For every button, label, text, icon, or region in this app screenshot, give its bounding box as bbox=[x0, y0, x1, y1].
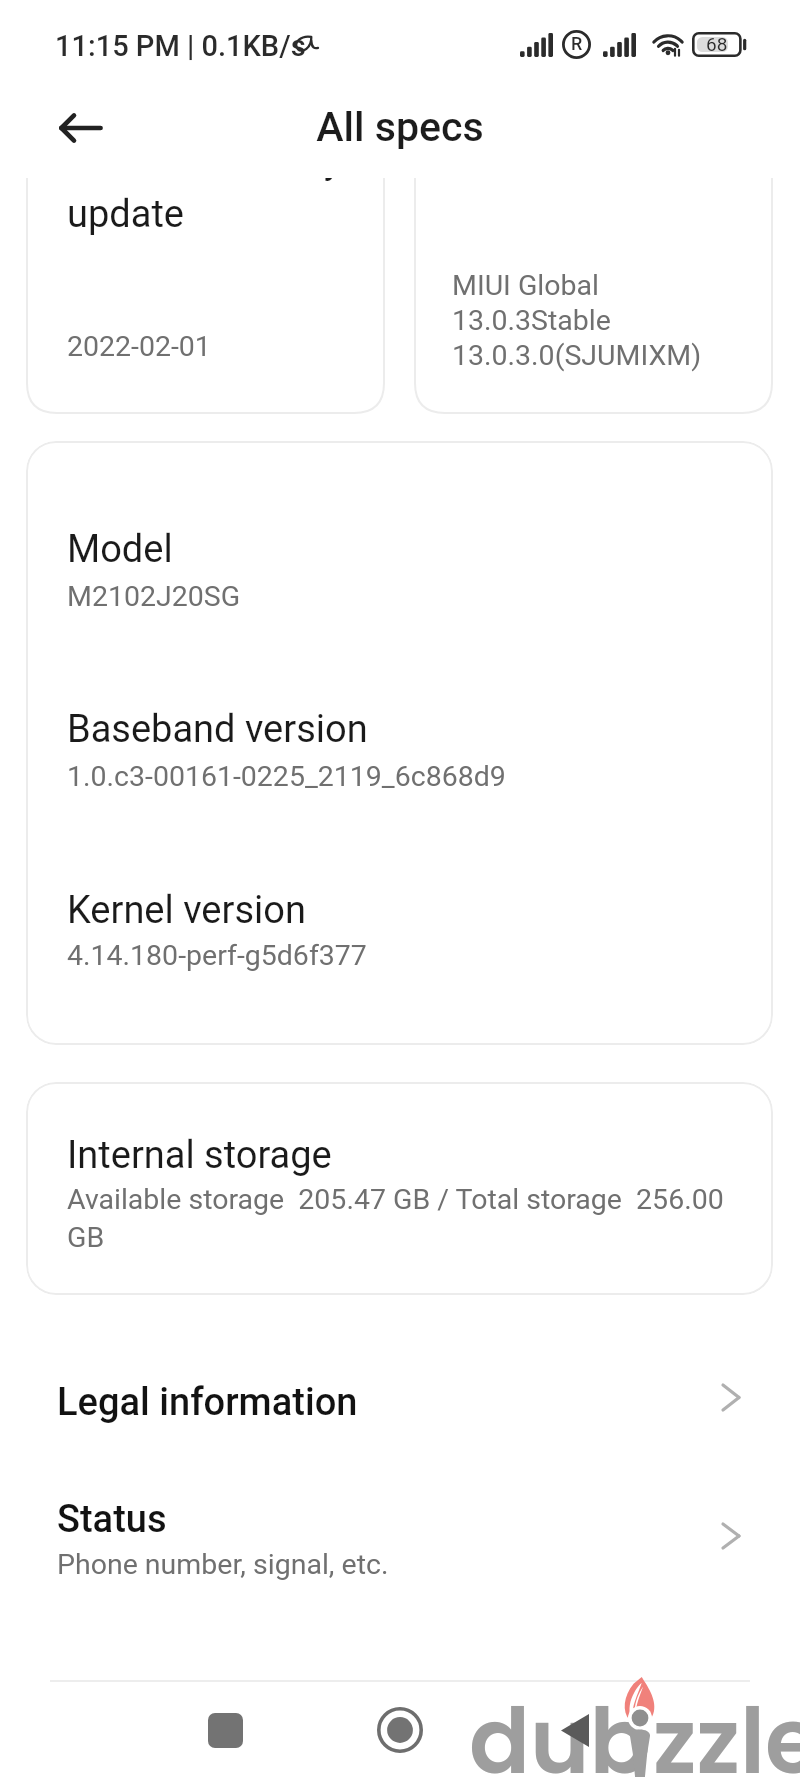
staticText: MIUI Global 13.0.3Stable 13.0.3.0(SJUMIX… bbox=[452, 269, 702, 372]
button[interactable]: Back bbox=[54, 101, 108, 155]
button[interactable]: Recent apps bbox=[165, 1681, 285, 1777]
staticText: 68 bbox=[706, 33, 728, 55]
staticText: Android security bbox=[67, 138, 377, 186]
button[interactable]: Status bbox=[0, 1462, 800, 1602]
staticText: dub bbox=[469, 1679, 651, 1777]
staticText: 4.14.180-perf-g5d6f377 bbox=[67, 939, 367, 972]
button[interactable]: Home bbox=[340, 1681, 460, 1777]
staticText: Kernel version bbox=[67, 888, 306, 933]
staticText: 1.0.c3-00161-0225_2119_6c868d9 bbox=[67, 760, 506, 793]
staticText: Phone number, signal, etc. bbox=[57, 1548, 389, 1581]
staticText: Status bbox=[57, 1497, 167, 1542]
staticText: MIUI version bbox=[455, 136, 755, 184]
button[interactable]: Legal information bbox=[0, 1340, 800, 1460]
button[interactable]: Back bbox=[515, 1681, 635, 1777]
staticText: Baseband version bbox=[67, 707, 368, 752]
staticText: 2022-02-01 bbox=[67, 330, 211, 363]
staticText: Internal storage bbox=[67, 1133, 332, 1178]
staticText: update bbox=[67, 192, 184, 237]
staticText: R bbox=[571, 33, 583, 54]
staticText: Model bbox=[67, 527, 173, 572]
staticText: 11:15 PM | 0.1KB/s bbox=[55, 29, 306, 63]
staticText: Legal information bbox=[57, 1380, 358, 1425]
staticText: M2102J20SG bbox=[67, 580, 241, 613]
staticText: All specs bbox=[0, 103, 800, 151]
staticText: Available storage 205.47 GB / Total stor… bbox=[67, 1183, 729, 1254]
staticText: zzle bbox=[653, 1679, 800, 1777]
